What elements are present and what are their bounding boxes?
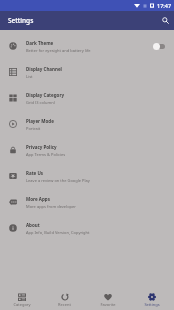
staticText: Grid (3 column): [26, 100, 55, 105]
button[interactable]: Dark Theme: [0, 33, 174, 59]
button[interactable]: About: [0, 215, 174, 241]
staticText: List: [26, 74, 33, 79]
button[interactable]: Display Category: [0, 85, 174, 111]
button[interactable]: Privacy Policy: [0, 137, 174, 163]
staticText: Dark Theme: [26, 40, 54, 46]
button[interactable]: Rate Us: [0, 163, 174, 189]
button[interactable]: Favorite: [86, 288, 130, 310]
staticText: Favorite: [100, 302, 116, 307]
staticText: Rate Us: [26, 170, 44, 176]
staticText: Better for eyesight and battery life: [26, 48, 91, 53]
staticText: Settings: [144, 302, 160, 307]
staticText: Player Mode: [26, 118, 54, 124]
staticText: More apps from developer: [26, 204, 76, 209]
button[interactable]: Display Channel: [0, 59, 174, 85]
staticText: Portrait: [26, 126, 41, 131]
button[interactable]: Search: [156, 11, 174, 30]
staticText: Settings: [8, 16, 34, 25]
staticText: More Apps: [26, 196, 50, 202]
button[interactable]: Recent: [43, 288, 86, 310]
button[interactable]: Player Mode: [0, 111, 174, 137]
staticText: App Info, Build Version, Copyright: [26, 230, 90, 235]
staticText: Recent: [58, 302, 71, 307]
staticText: Privacy Policy: [26, 144, 57, 150]
staticText: About: [26, 222, 40, 228]
staticText: Display Category: [26, 92, 64, 98]
staticText: Display Channel: [26, 66, 62, 72]
staticText: 17:47: [157, 2, 172, 9]
staticText: App Terms & Policies: [26, 152, 66, 157]
button[interactable]: Settings: [130, 288, 174, 310]
button[interactable]: Category: [0, 288, 43, 310]
staticText: Category: [13, 302, 31, 307]
staticText: Leave a review on the Google Play: [26, 178, 90, 183]
button[interactable]: More Apps: [0, 189, 174, 215]
